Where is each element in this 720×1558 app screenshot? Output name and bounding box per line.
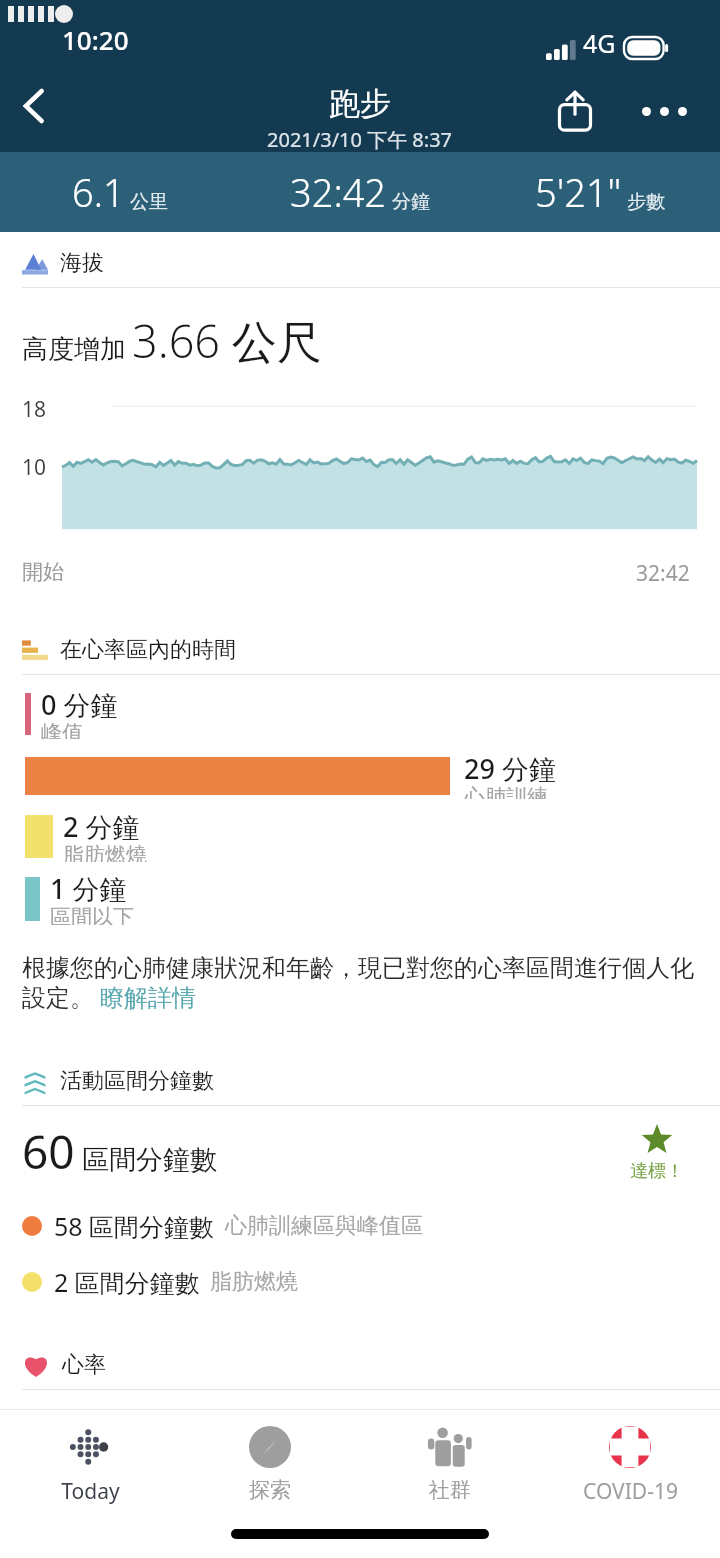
- staticText: 社群: [429, 1477, 471, 1503]
- staticText: 18: [22, 395, 47, 424]
- staticText: 心肺訓練區與峰值區: [225, 1212, 423, 1240]
- staticText: 2021/3/10 下午 8:37: [267, 126, 453, 153]
- staticText: 4G: [583, 26, 616, 60]
- staticText: 150: [22, 1400, 101, 1463]
- staticText: 6.1: [72, 166, 125, 218]
- staticText: 活動區間分鐘數: [60, 1067, 214, 1095]
- staticText: 探索: [249, 1477, 291, 1503]
- staticText: 5'21": [535, 166, 622, 218]
- button[interactable]: More options: [630, 80, 698, 142]
- button[interactable]: 6.1: [0, 152, 240, 232]
- staticText: 分鐘: [392, 190, 430, 214]
- button[interactable]: 活動區間分鐘數: [0, 1057, 720, 1105]
- staticText: 區間分鐘數: [82, 1143, 217, 1177]
- button[interactable]: Back: [6, 78, 62, 134]
- staticText: 設定。: [22, 983, 94, 1013]
- staticText: Today: [61, 1477, 120, 1506]
- staticText: 區間以下: [50, 904, 134, 925]
- button[interactable]: 58 區間分鐘數: [22, 1209, 720, 1243]
- staticText: 1 分鐘: [50, 870, 127, 907]
- staticText: 58 區間分鐘數: [54, 1209, 215, 1243]
- staticText: 60: [22, 1120, 75, 1183]
- staticText: 10: [22, 453, 47, 482]
- staticText: 根據您的心肺健康狀況和年齡，現已對您的心率區間進行個人化: [22, 953, 694, 983]
- staticText: 海拔: [60, 249, 104, 277]
- staticText: 步數: [627, 190, 665, 214]
- staticText: 2 區間分鐘數: [54, 1265, 200, 1299]
- button[interactable]: 探索: [180, 1410, 360, 1518]
- button[interactable]: 心率: [0, 1341, 720, 1389]
- staticText: 跑步: [329, 84, 391, 123]
- button[interactable]: 2 區間分鐘數: [22, 1265, 720, 1299]
- staticText: 公里: [130, 190, 168, 214]
- staticText: 心率: [62, 1351, 106, 1379]
- staticText: 3.66 公尺: [132, 310, 322, 371]
- button[interactable]: 在心率區內的時間: [0, 626, 720, 674]
- staticText: 瞭解詳情: [100, 983, 196, 1013]
- staticText: 0 分鐘: [41, 686, 118, 723]
- staticText: 開始: [22, 559, 64, 585]
- staticText: 2 分鐘: [63, 808, 140, 845]
- staticText: 29 分鐘: [464, 750, 556, 787]
- staticText: 脂肪燃燒: [63, 842, 147, 862]
- button[interactable]: 海拔: [0, 239, 720, 287]
- button[interactable]: Share: [544, 80, 606, 142]
- staticText: 32:42: [636, 559, 690, 588]
- button[interactable]: COVID-19: [540, 1410, 720, 1518]
- staticText: 10:20: [62, 22, 129, 57]
- button[interactable]: Today: [0, 1410, 180, 1518]
- staticText: 在心率區內的時間: [60, 636, 236, 664]
- staticText: 心肺訓練: [464, 784, 548, 799]
- staticText: 峰值: [41, 720, 83, 739]
- button[interactable]: 瞭解詳情: [100, 983, 196, 1013]
- staticText: 達標！: [630, 1160, 684, 1183]
- staticText: 高度增加: [22, 333, 126, 366]
- button[interactable]: 社群: [360, 1410, 540, 1518]
- staticText: 脂肪燃燒: [210, 1268, 298, 1296]
- button[interactable]: 5'21": [480, 152, 720, 232]
- staticText: 32:42: [290, 166, 387, 218]
- staticText: COVID-19: [583, 1477, 678, 1506]
- button[interactable]: 32:42: [240, 152, 480, 232]
